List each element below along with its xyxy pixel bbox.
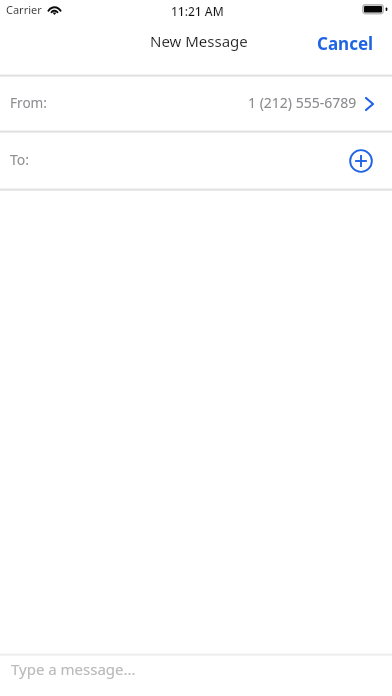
staticText: Cancel <box>317 32 374 55</box>
button[interactable]: From: <box>0 75 392 130</box>
button[interactable]: Cancel <box>299 24 392 63</box>
staticText: 11:21 AM <box>171 3 224 19</box>
button[interactable]: Type a message... <box>0 653 392 696</box>
button[interactable]: To: <box>0 131 392 187</box>
staticText: Carrier <box>6 2 42 17</box>
staticText: New Message <box>150 31 248 51</box>
staticText: To: <box>10 150 30 169</box>
staticText: From: <box>10 93 47 112</box>
staticText: Type a message... <box>11 659 136 679</box>
staticText: 1 (212) 555-6789 <box>248 93 357 112</box>
button[interactable]: Add recipient <box>344 142 378 176</box>
